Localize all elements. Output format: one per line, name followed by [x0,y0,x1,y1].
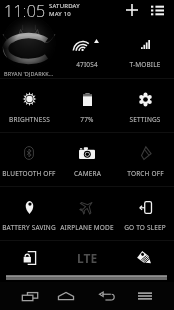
button[interactable]: SETTINGS [116,79,174,132]
staticText: 11:05 [4,0,46,20]
button[interactable]: Home [52,282,80,310]
staticText: TORCH OFF [127,169,164,178]
staticText: CAMERA [74,169,101,178]
button[interactable]: Back [93,282,121,310]
button[interactable]: Menu [131,282,159,310]
button[interactable]: Recent apps [16,282,44,310]
staticText: GO TO SLEEP [124,223,166,232]
button[interactable]: 47I0S4 [58,20,116,78]
staticText: SATURDAY [49,2,80,10]
button[interactable]: BRYAN 'DJDARKK... [0,20,58,78]
staticText: 47I0S4 [76,60,98,69]
staticText: BATTERY SAVING [2,223,56,232]
button[interactable]: Edit tile list [146,0,168,20]
staticText: BRYAN 'DJDARKK... [4,70,54,77]
button[interactable]: Add tile [121,0,143,20]
button[interactable]: 77% [58,79,116,132]
staticText: 77% [80,115,94,124]
button[interactable]: Tags [116,241,174,275]
staticText: MAY 10 [49,10,71,18]
button[interactable]: T-MOBILE [116,20,174,78]
staticText: LTE [77,250,98,266]
button[interactable]: Lock screen [0,241,58,275]
button[interactable]: BATTERY SAVING [0,187,58,240]
button[interactable]: BLUETOOTH OFF [0,133,58,186]
button[interactable]: TORCH OFF [116,133,174,186]
staticText: BRIGHTNESS [9,115,50,124]
staticText: BLUETOOTH OFF [2,169,56,178]
staticText: SETTINGS [129,115,161,124]
button[interactable]: GO TO SLEEP [116,187,174,240]
button[interactable]: CAMERA [58,133,116,186]
button[interactable]: BRIGHTNESS [0,79,58,132]
button[interactable]: AIRPLANE MODE [58,187,116,240]
staticText: T-MOBILE [129,60,161,69]
staticText: AIRPLANE MODE [60,223,114,232]
